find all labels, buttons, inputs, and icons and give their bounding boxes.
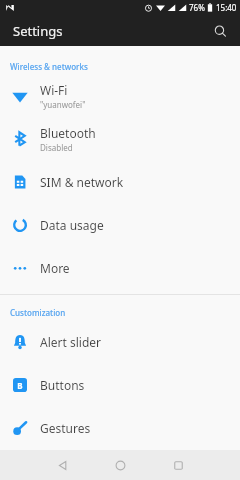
staticText: Data usage	[40, 217, 104, 233]
staticText: Buttons	[40, 377, 85, 393]
staticText: More	[40, 260, 70, 276]
staticText: Wireless & networks	[10, 61, 88, 72]
staticText: Wi-Fi	[40, 82, 68, 98]
button[interactable]: Home	[100, 450, 140, 480]
staticText: Gestures	[40, 420, 91, 436]
staticText: Settings	[13, 22, 63, 40]
staticText: Disabled	[40, 142, 73, 153]
button[interactable]: Wi-Fi	[0, 74, 240, 117]
staticText: "yuanwofei"	[40, 99, 86, 110]
button[interactable]: Gestures	[0, 406, 240, 449]
button[interactable]: Back	[42, 450, 82, 480]
button[interactable]: Recents	[158, 450, 198, 480]
staticText: 15:40	[216, 2, 237, 13]
staticText: B	[17, 380, 23, 391]
staticText: SIM & network	[40, 174, 124, 190]
button[interactable]: Alert slider	[0, 320, 240, 363]
staticText: Alert slider	[40, 334, 101, 350]
staticText: 76%	[189, 2, 205, 13]
button[interactable]: SIM & network	[0, 160, 240, 203]
button[interactable]: B	[0, 363, 240, 406]
staticText: Bluetooth	[40, 125, 96, 141]
button[interactable]: Data usage	[0, 203, 240, 246]
button[interactable]: Bluetooth	[0, 117, 240, 160]
button[interactable]: More	[0, 246, 240, 289]
staticText: Customization	[10, 307, 66, 318]
button[interactable]: Search	[207, 18, 233, 44]
